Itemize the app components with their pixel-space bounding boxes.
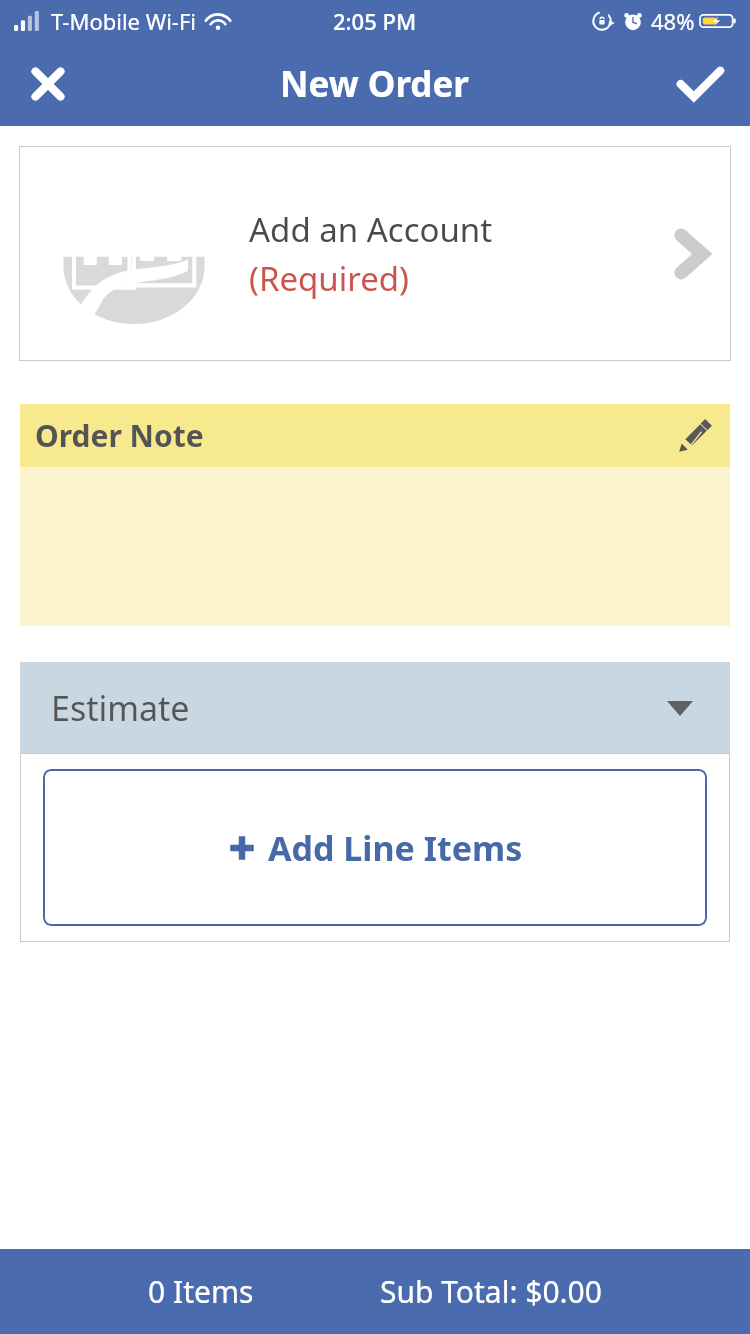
button[interactable]: Estimate <box>20 662 730 753</box>
staticText: (Required) <box>249 256 410 301</box>
staticText: 2:05 PM <box>333 6 417 36</box>
button[interactable]: Add Line Items <box>43 769 707 926</box>
staticText: Order Note <box>35 415 204 456</box>
button[interactable]: Close <box>12 48 84 120</box>
button[interactable]: Edit order note <box>666 407 724 465</box>
button[interactable]: Order Note <box>20 404 730 467</box>
staticText: New Order <box>280 60 470 108</box>
staticText: Add Line Items <box>268 825 523 871</box>
staticText: Add an Account <box>249 207 493 252</box>
staticText: T-Mobile Wi-Fi <box>51 6 197 36</box>
button[interactable]: Add an Account <box>19 146 731 361</box>
staticText: Sub Total: $0.00 <box>380 1271 602 1312</box>
button[interactable]: Collapse estimate <box>652 680 708 736</box>
staticText: 48% <box>651 6 695 36</box>
staticText: Estimate <box>51 685 190 731</box>
button[interactable]: Save order <box>664 48 736 120</box>
staticText: 0 Items <box>148 1271 254 1312</box>
